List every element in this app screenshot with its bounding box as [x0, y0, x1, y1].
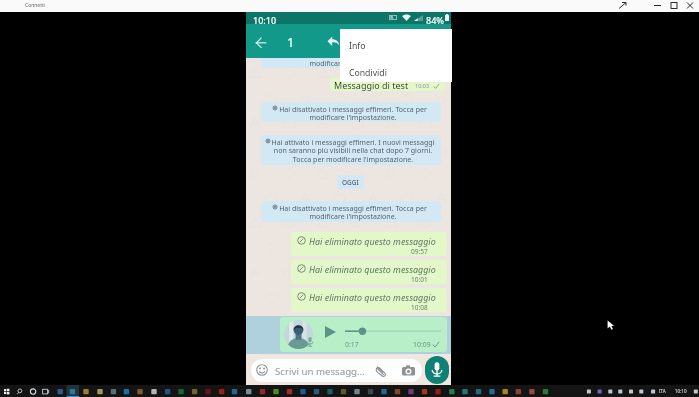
staticText: Messaggio di test	[334, 79, 409, 91]
staticText: Hai eliminato questo messaggio	[309, 235, 436, 247]
button[interactable]: Messaggio di test	[330, 78, 445, 91]
button[interactable]: Hai eliminato questo messaggio	[291, 260, 447, 284]
button[interactable]: Info	[340, 29, 452, 57]
button[interactable]: Hai eliminato questo messaggio	[291, 232, 447, 256]
staticText: 09:57	[411, 247, 428, 256]
other: Play	[325, 326, 336, 338]
staticText: Hai disattivato i messaggi effimeri. Toc…	[263, 104, 441, 122]
button[interactable]: Record voice message	[425, 356, 449, 384]
staticText: 10:09	[413, 340, 431, 349]
staticText: Connetti	[25, 2, 46, 9]
staticText: Scrivi un messagg…	[275, 365, 365, 378]
staticText: OGGI	[342, 178, 359, 187]
button[interactable]: Hai disattivato i messaggi effimeri. Toc…	[261, 201, 441, 222]
other: Window controls	[615, 0, 695, 11]
staticText: 84%	[426, 14, 444, 26]
button[interactable]: Hai eliminato questo messaggio	[291, 288, 447, 312]
button[interactable]: Hai attivato i messaggi effimeri. I nuov…	[261, 135, 441, 165]
button[interactable]: Play	[280, 317, 447, 352]
button[interactable]: Hai disattivato i messaggi effimeri. Toc…	[261, 48, 441, 68]
staticText: ITA	[659, 388, 666, 394]
button[interactable]: Reply	[324, 31, 342, 49]
button[interactable]: Back	[246, 28, 276, 54]
staticText: 1	[287, 33, 295, 50]
staticText: 10:10	[675, 388, 687, 394]
staticText: 10:01	[411, 275, 428, 284]
staticText: Hai disattivato i messaggi effimeri. Toc…	[263, 203, 441, 221]
staticText: Hai eliminato questo messaggio	[309, 263, 436, 275]
staticText: 10:03	[415, 82, 430, 89]
staticText: Hai attivato i messaggi effimeri. I nuov…	[263, 137, 441, 164]
button[interactable]: Scrivi un messagg…	[251, 359, 422, 382]
staticText: Info	[349, 40, 366, 52]
staticText: 10:08	[411, 303, 428, 312]
other: Attach	[375, 364, 387, 377]
staticText: 10:10	[253, 14, 277, 26]
other: Camera	[402, 365, 415, 376]
button[interactable]: Condividi	[340, 57, 452, 82]
button[interactable]: Hai disattivato i messaggi effimeri. Toc…	[261, 102, 441, 122]
staticText: Hai disattivato i messaggi effimeri. Toc…	[263, 50, 441, 68]
staticText: Condividi	[349, 67, 387, 79]
staticText: Hai eliminato questo messaggio	[309, 291, 436, 303]
staticText: 0:17	[345, 340, 359, 349]
